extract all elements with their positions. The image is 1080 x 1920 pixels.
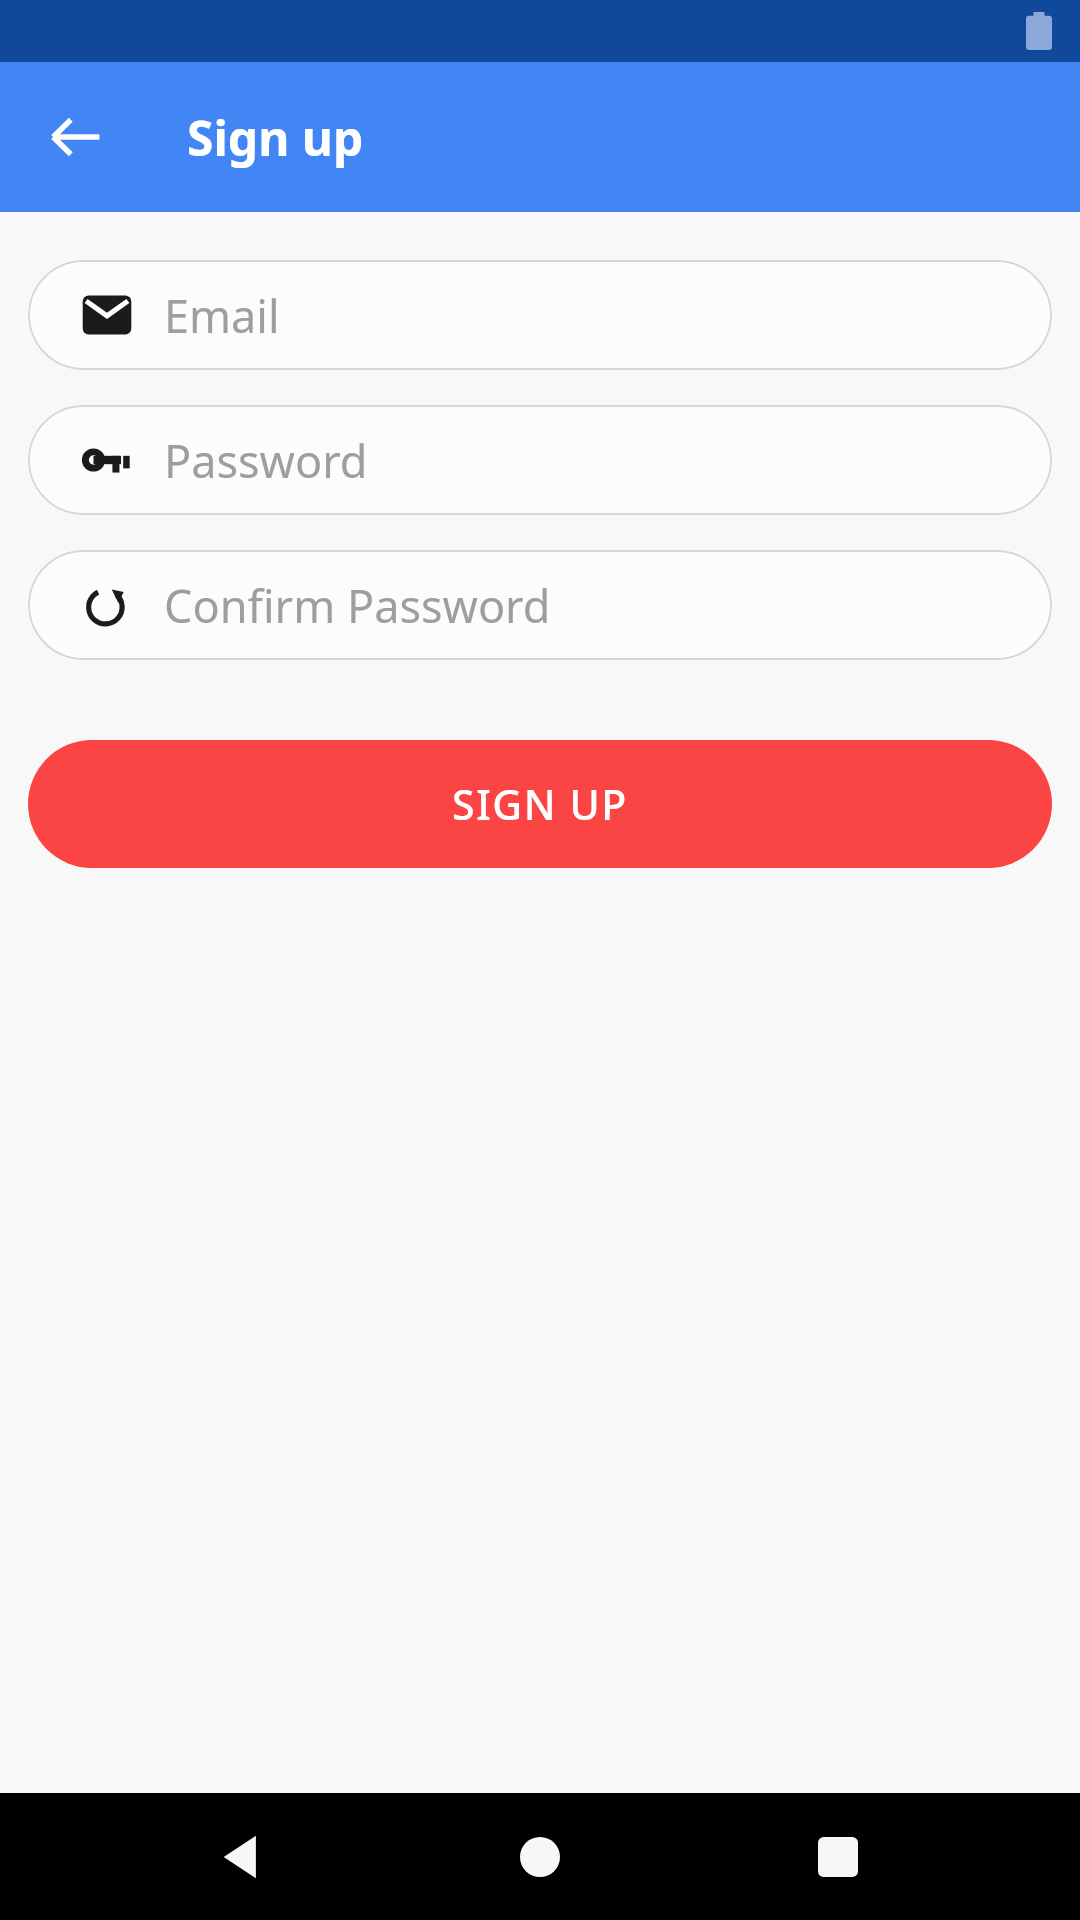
staticText: Confirm Password <box>164 575 551 636</box>
button[interactable]: Email <box>28 260 1052 370</box>
button[interactable]: Confirm Password <box>28 550 1052 660</box>
button[interactable]: Recent apps <box>783 1802 893 1912</box>
staticText: Email <box>164 285 280 346</box>
button[interactable]: Home <box>485 1802 595 1912</box>
button[interactable]: Back <box>28 89 124 185</box>
button[interactable]: Back <box>188 1802 298 1912</box>
button[interactable]: SIGN UP <box>28 740 1052 868</box>
staticText: SIGN UP <box>452 776 628 832</box>
staticText: Password <box>164 430 368 491</box>
staticText: Sign up <box>187 105 364 170</box>
button[interactable]: Password <box>28 405 1052 515</box>
